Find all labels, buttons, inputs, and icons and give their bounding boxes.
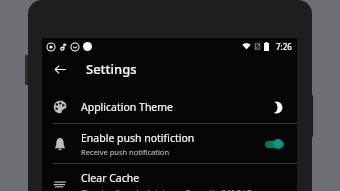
- button[interactable]: Enable push notification: [262, 136, 286, 152]
- button[interactable]: Back: [48, 57, 72, 81]
- staticText: Receive push notification: [81, 147, 170, 157]
- staticText: Application Theme: [81, 100, 174, 114]
- staticText: 7:26: [276, 41, 292, 52]
- button[interactable]: Application Theme: [42, 90, 297, 123]
- staticText: Clear Cache: [81, 171, 140, 185]
- button[interactable]: Clear Cache: [42, 164, 297, 191]
- staticText: Enable push notifiction: [81, 131, 195, 145]
- button[interactable]: Toggle dark theme: [266, 97, 286, 117]
- staticText: Clear locally cached statuses. Currently…: [81, 187, 252, 191]
- staticText: Settings: [86, 60, 137, 78]
- button[interactable]: Enable push notifiction: [42, 124, 297, 163]
